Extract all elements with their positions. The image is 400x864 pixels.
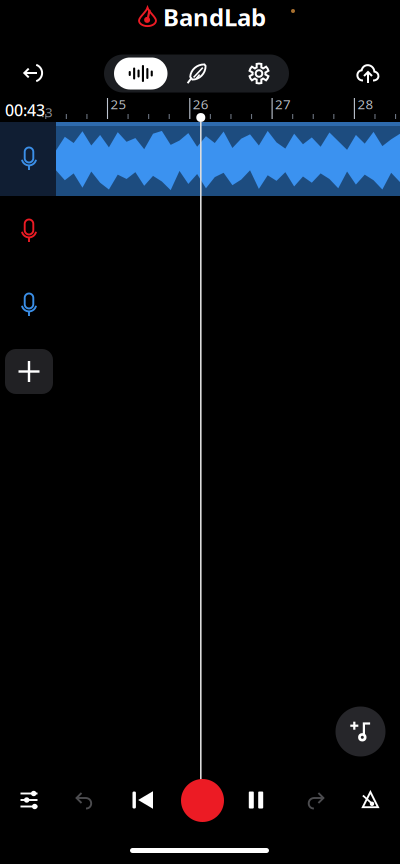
button[interactable]: Tracks — [114, 57, 167, 89]
button[interactable]: Lyrics — [174, 54, 218, 92]
staticText: 28 — [357, 95, 373, 113]
button[interactable]: Track 2 microphone — [6, 208, 52, 254]
button[interactable]: Exit — [10, 51, 56, 95]
button[interactable]: Track 1 microphone — [6, 136, 52, 182]
button[interactable]: Mixer — [6, 777, 52, 823]
button[interactable]: Undo — [61, 777, 107, 823]
staticText: BandLab — [163, 1, 266, 33]
button[interactable]: Add music — [335, 706, 385, 756]
button[interactable]: Metronome — [347, 777, 393, 823]
staticText: 25 — [110, 95, 126, 113]
staticText: 00:43 — [5, 99, 45, 121]
staticText: 27 — [275, 95, 291, 113]
button[interactable]: Record — [181, 779, 224, 822]
staticText: .3 — [41, 103, 53, 121]
staticText: 26 — [193, 95, 209, 113]
button[interactable]: Add track — [5, 349, 53, 394]
button[interactable]: Pause — [233, 777, 279, 823]
button[interactable]: Skip to start — [120, 777, 166, 823]
button[interactable]: Upload — [345, 51, 391, 95]
button[interactable]: Track 3 microphone — [6, 282, 52, 328]
button[interactable]: Settings — [237, 54, 281, 92]
button[interactable]: Redo — [292, 777, 338, 823]
